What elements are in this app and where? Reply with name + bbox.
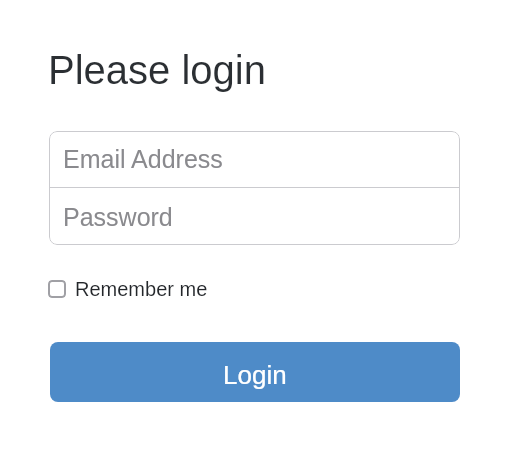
button[interactable]: Email Address (49, 131, 460, 187)
button[interactable]: Password (49, 188, 460, 245)
staticText: Password (63, 203, 173, 231)
button[interactable]: Remember me (48, 278, 208, 300)
button[interactable]: Login (50, 342, 460, 402)
staticText: Please login (48, 48, 266, 93)
staticText: Email Address (63, 145, 223, 173)
staticText: Remember me (75, 278, 208, 300)
staticText: Login (223, 360, 287, 389)
